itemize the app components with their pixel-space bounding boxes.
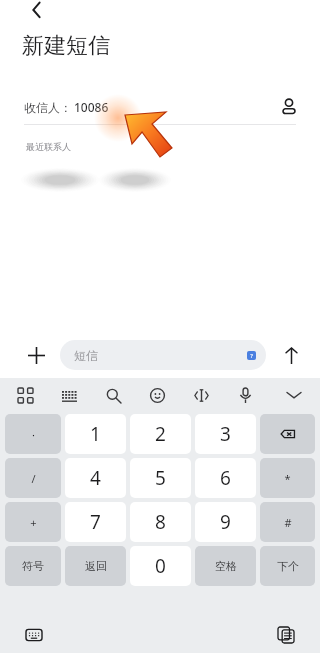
button[interactable]: 8 (130, 502, 191, 542)
button[interactable]: Cursor (190, 384, 212, 406)
button[interactable]: + (5, 502, 61, 542)
button[interactable]: 空格 (195, 546, 256, 586)
staticText: 10086 (74, 99, 109, 115)
button[interactable]: Back (24, 0, 50, 26)
button[interactable]: · (5, 414, 61, 454)
button[interactable]: 7 (65, 502, 126, 542)
staticText: 0 (155, 553, 166, 579)
staticText: 1 (90, 421, 101, 447)
button[interactable]: Emoji (146, 384, 168, 406)
button[interactable]: Search (102, 384, 124, 406)
button[interactable]: Keyboard (58, 384, 80, 406)
button[interactable]: 5 (130, 458, 191, 498)
staticText: 9 (220, 509, 231, 535)
button[interactable]: 返回 (65, 546, 126, 586)
button[interactable]: 2 (130, 414, 191, 454)
button[interactable]: 6 (195, 458, 256, 498)
button[interactable]: Backspace (260, 414, 315, 454)
button[interactable]: # (260, 502, 315, 542)
button[interactable]: / (5, 458, 61, 498)
staticText: 收信人： (24, 100, 72, 115)
button[interactable]: Clipboard (274, 623, 298, 647)
button[interactable]: Switch keyboard (22, 623, 46, 647)
button[interactable]: 下个 (260, 546, 315, 586)
button[interactable]: 短信 (60, 340, 266, 370)
staticText: 返回 (85, 559, 107, 573)
staticText: * (284, 471, 291, 486)
button[interactable]: 1 (65, 414, 126, 454)
button[interactable]: Send (276, 340, 306, 370)
staticText: 3 (220, 421, 231, 447)
button[interactable]: 0 (130, 546, 191, 586)
staticText: 最近联系人 (26, 141, 71, 152)
button[interactable]: 4 (65, 458, 126, 498)
button[interactable]: Pick contact (274, 92, 304, 122)
staticText: 2 (155, 421, 166, 447)
button[interactable]: Hide keyboard (282, 383, 306, 407)
button[interactable]: Voice (234, 384, 256, 406)
staticText: # (284, 515, 292, 530)
staticText: 4 (90, 465, 101, 491)
button[interactable]: Apps (14, 384, 36, 406)
staticText: 空格 (215, 559, 237, 573)
button[interactable]: 收信人： (0, 90, 320, 124)
staticText: 下个 (277, 559, 299, 573)
staticText: ? (250, 352, 253, 360)
button[interactable]: Add attachment (22, 341, 50, 369)
staticText: + (30, 515, 37, 530)
staticText: / (31, 471, 36, 486)
staticText: · (32, 427, 35, 442)
staticText: 短信 (74, 348, 98, 363)
button[interactable]: 符号 (5, 546, 61, 586)
staticText: 6 (220, 465, 231, 491)
button[interactable]: 3 (195, 414, 256, 454)
staticText: 符号 (22, 559, 44, 573)
staticText: 8 (155, 509, 166, 535)
staticText: 7 (90, 509, 101, 535)
staticText: 新建短信 (22, 32, 110, 60)
button[interactable]: 9 (195, 502, 256, 542)
button[interactable]: * (260, 458, 315, 498)
staticText: 5 (155, 465, 166, 491)
